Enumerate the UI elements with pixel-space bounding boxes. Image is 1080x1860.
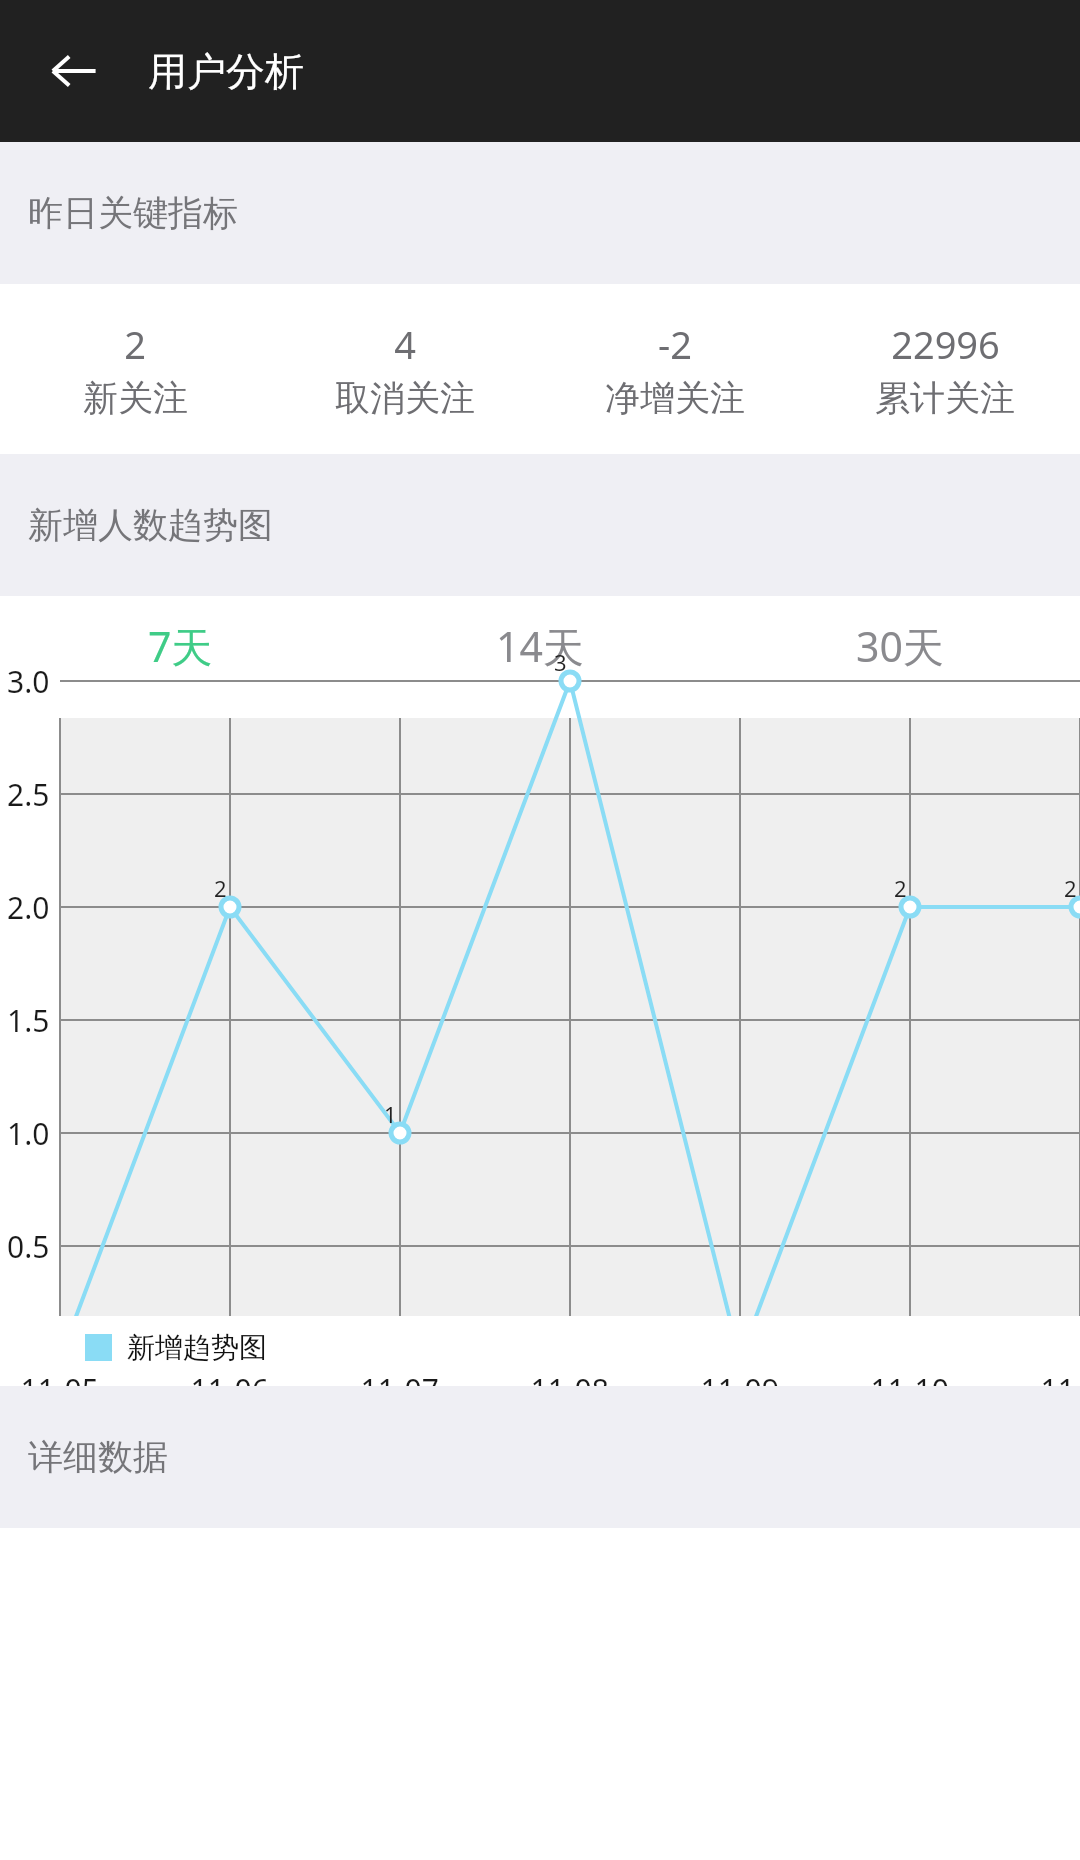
button[interactable]: 22996 bbox=[810, 318, 1080, 420]
button[interactable]: -2 bbox=[540, 318, 810, 420]
staticText: 详细数据 bbox=[28, 1435, 168, 1479]
staticText: 净增关注 bbox=[605, 376, 745, 420]
button[interactable]: 30天 bbox=[720, 618, 1080, 674]
staticText: 新关注 bbox=[83, 376, 188, 420]
button[interactable]: 2 bbox=[0, 318, 270, 420]
staticText: 2 bbox=[124, 318, 146, 370]
staticText: 4 bbox=[394, 318, 416, 370]
button[interactable]: 7天 bbox=[0, 618, 360, 674]
button[interactable]: 4 bbox=[270, 318, 540, 420]
staticText: -2 bbox=[658, 318, 692, 370]
staticText: 昨日关键指标 bbox=[28, 191, 238, 235]
button[interactable]: 14天 bbox=[360, 618, 720, 674]
button[interactable]: Back bbox=[38, 35, 110, 107]
staticText: 用户分析 bbox=[148, 47, 304, 96]
staticText: 14天 bbox=[496, 618, 584, 674]
staticText: 7天 bbox=[148, 618, 213, 674]
staticText: 新增人数趋势图 bbox=[28, 503, 273, 547]
staticText: 累计关注 bbox=[875, 376, 1015, 420]
staticText: 22996 bbox=[891, 318, 1000, 370]
staticText: 取消关注 bbox=[335, 376, 475, 420]
staticText: 30天 bbox=[856, 618, 944, 674]
staticText: 新增趋势图 bbox=[127, 1330, 267, 1365]
